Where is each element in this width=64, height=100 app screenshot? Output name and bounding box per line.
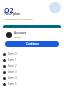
staticText: O2 bbox=[4, 6, 14, 16]
staticText: Continue bbox=[26, 42, 39, 46]
staticText: Item 0 bbox=[8, 52, 17, 56]
button[interactable]: Continue bbox=[5, 41, 59, 47]
button[interactable]: Item 0 bbox=[3, 51, 61, 57]
button[interactable]: Item 4 bbox=[3, 75, 61, 81]
staticText: Item 2 bbox=[8, 64, 17, 68]
staticText: Your plan bbox=[4, 11, 21, 16]
staticText: Item 5 bbox=[8, 82, 17, 86]
staticText: details bbox=[14, 35, 22, 38]
button[interactable]: Item 2 bbox=[3, 63, 61, 69]
staticText: Manage everything here bbox=[4, 17, 33, 20]
button[interactable]: Item 1 bbox=[3, 57, 61, 63]
button[interactable]: Item 3 bbox=[3, 69, 61, 75]
staticText: Item 1 bbox=[8, 58, 17, 62]
button[interactable]: Item 5 bbox=[3, 81, 61, 87]
staticText: Item 3 bbox=[8, 70, 17, 74]
staticText: Item 4 bbox=[8, 76, 17, 80]
staticText: Account bbox=[14, 31, 27, 35]
